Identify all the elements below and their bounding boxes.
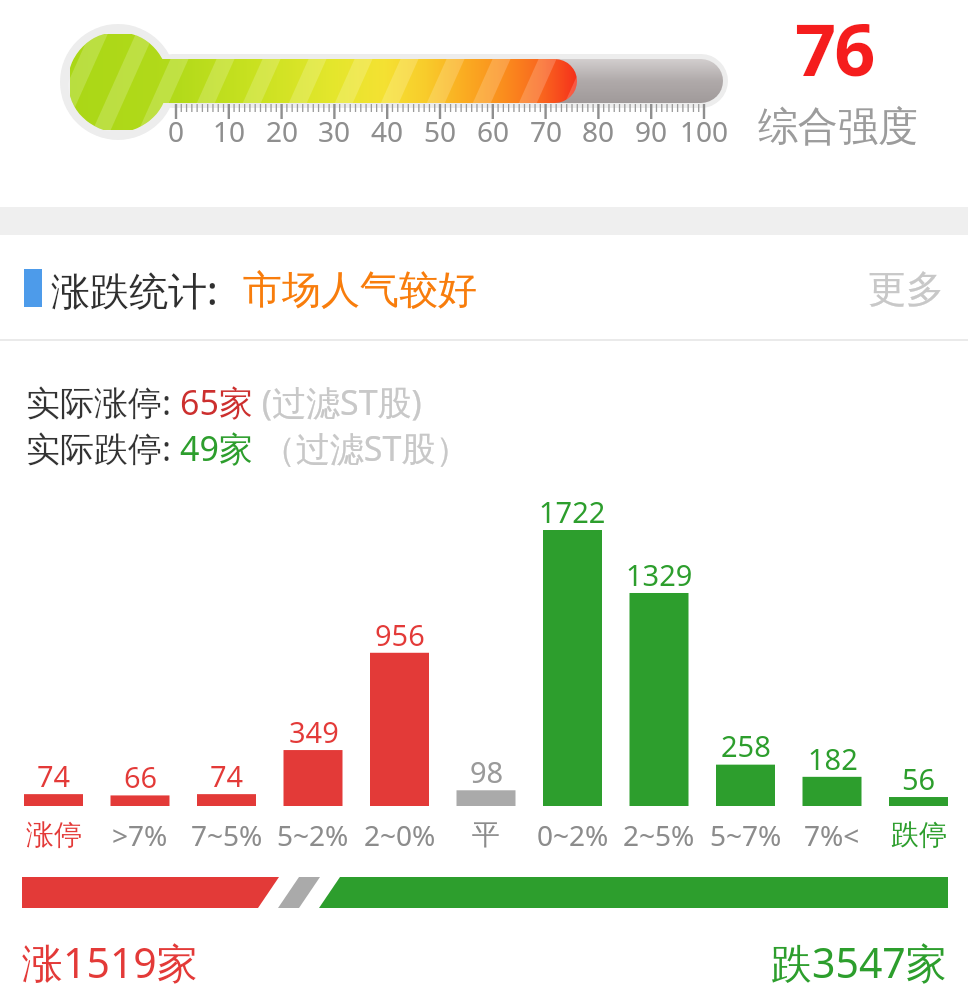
staticText: 956 <box>375 615 425 654</box>
staticText: 实际涨停: <box>26 379 180 425</box>
staticText: 跌停 <box>891 817 947 852</box>
staticText: 平 <box>472 817 500 852</box>
staticText: 跌3547家 <box>771 934 947 990</box>
staticText: 1722 <box>539 492 606 531</box>
staticText: 66 <box>124 757 158 796</box>
staticText: 5~2% <box>277 816 349 854</box>
staticText: 50 <box>424 112 457 150</box>
staticText: 0 <box>168 112 185 150</box>
staticText: 76 <box>795 0 874 97</box>
staticText: (过滤ST股) <box>253 379 422 425</box>
staticText: 20 <box>266 112 299 150</box>
staticText: 74 <box>37 756 71 795</box>
staticText: 182 <box>808 739 858 778</box>
staticText: 市场人气较好 <box>243 265 477 314</box>
staticText: 涨1519家 <box>22 934 198 990</box>
staticText: 7%< <box>804 816 860 854</box>
staticText: 49家 <box>180 425 253 471</box>
staticText: 65家 <box>180 379 253 425</box>
staticText: 70 <box>530 112 563 150</box>
staticText: 更多 <box>868 265 944 313</box>
staticText: 30 <box>318 112 351 150</box>
button[interactable]: 更多 <box>824 259 944 319</box>
staticText: >7% <box>112 816 168 854</box>
staticText: 258 <box>721 726 771 765</box>
staticText: 1329 <box>626 555 693 594</box>
staticText: 7~5% <box>191 816 263 854</box>
staticText: 5~7% <box>710 816 782 854</box>
staticText: 100 <box>680 112 729 150</box>
staticText: 80 <box>582 112 615 150</box>
staticText: 涨停 <box>26 817 82 852</box>
button[interactable]: 涨跌统计: <box>51 259 477 319</box>
staticText: （过滤ST股） <box>253 425 470 471</box>
staticText: 98 <box>470 752 504 791</box>
staticText: 涨跌统计: <box>51 263 218 316</box>
staticText: 60 <box>477 112 510 150</box>
staticText: 90 <box>635 112 668 150</box>
staticText: 10 <box>213 112 246 150</box>
staticText: 74 <box>210 756 244 795</box>
staticText: 综合强度 <box>758 101 918 151</box>
staticText: 349 <box>289 712 339 751</box>
staticText: 2~0% <box>364 816 436 854</box>
staticText: 40 <box>371 112 404 150</box>
staticText: 0~2% <box>537 816 609 854</box>
staticText: 实际跌停: <box>26 425 180 471</box>
staticText: 2~5% <box>623 816 695 854</box>
staticText: 56 <box>902 759 936 798</box>
